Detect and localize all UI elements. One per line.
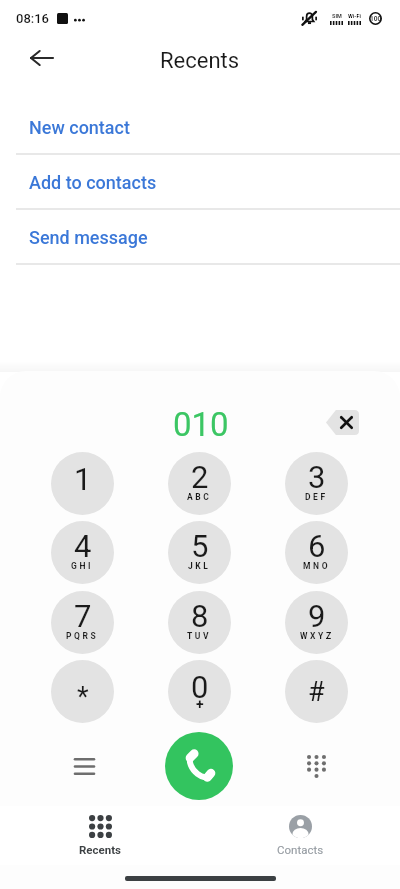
staticText: MNO (303, 561, 331, 571)
button[interactable]: Call (165, 732, 233, 800)
staticText: Send message (29, 227, 148, 248)
button[interactable]: 9 (285, 591, 348, 654)
staticText: 010 (173, 405, 229, 444)
staticText: WXYZ (300, 631, 334, 641)
staticText: 8 (191, 598, 209, 634)
staticText: 1 (74, 461, 92, 497)
staticText: JKL (188, 561, 211, 571)
staticText: Contacts (277, 843, 324, 856)
staticText: * (77, 681, 89, 713)
button[interactable]: Contacts (200, 806, 400, 865)
button[interactable]: * (51, 660, 114, 723)
staticText: 3 (308, 459, 326, 495)
button[interactable]: 6 (285, 521, 348, 584)
button[interactable]: 1 (51, 452, 114, 515)
staticText: 7 (74, 598, 92, 634)
staticText: TUV (187, 631, 212, 641)
button[interactable]: 4 (51, 521, 114, 584)
button[interactable]: 8 (168, 591, 231, 654)
button[interactable]: 2 (168, 452, 231, 515)
staticText: + (196, 696, 204, 712)
button[interactable]: # (285, 660, 348, 723)
button[interactable]: Backspace (322, 406, 363, 439)
button[interactable]: 0 (168, 660, 231, 723)
button[interactable]: 5 (168, 521, 231, 584)
staticText: # (308, 676, 325, 708)
button[interactable]: New contact (0, 100, 400, 155)
staticText: Recents (160, 48, 240, 74)
button[interactable]: Recents (0, 806, 200, 865)
staticText: SIM (332, 13, 342, 19)
staticText: DEF (305, 492, 328, 502)
staticText: PQRS (66, 631, 99, 641)
button[interactable]: 3 (285, 452, 348, 515)
staticText: 0 (191, 669, 209, 705)
staticText: GHI (71, 561, 94, 571)
staticText: Wi-Fi (348, 13, 361, 19)
button[interactable]: 7 (51, 591, 114, 654)
button[interactable]: Dialpad (281, 731, 351, 801)
staticText: 4 (74, 528, 92, 564)
button[interactable]: Back (18, 34, 65, 81)
staticText: 100 (370, 15, 382, 23)
staticText: 08:16 (16, 11, 49, 26)
staticText: 6 (308, 528, 326, 564)
staticText: ABC (187, 492, 212, 502)
button[interactable]: Menu (49, 731, 119, 801)
button[interactable]: Add to contacts (0, 155, 400, 210)
staticText: New contact (29, 117, 130, 138)
staticText: Add to contacts (29, 172, 157, 193)
staticText: 9 (308, 598, 326, 634)
staticText: 2 (191, 459, 209, 495)
staticText: Recents (79, 843, 122, 856)
button[interactable]: Send message (0, 210, 400, 265)
staticText: 5 (191, 528, 209, 564)
